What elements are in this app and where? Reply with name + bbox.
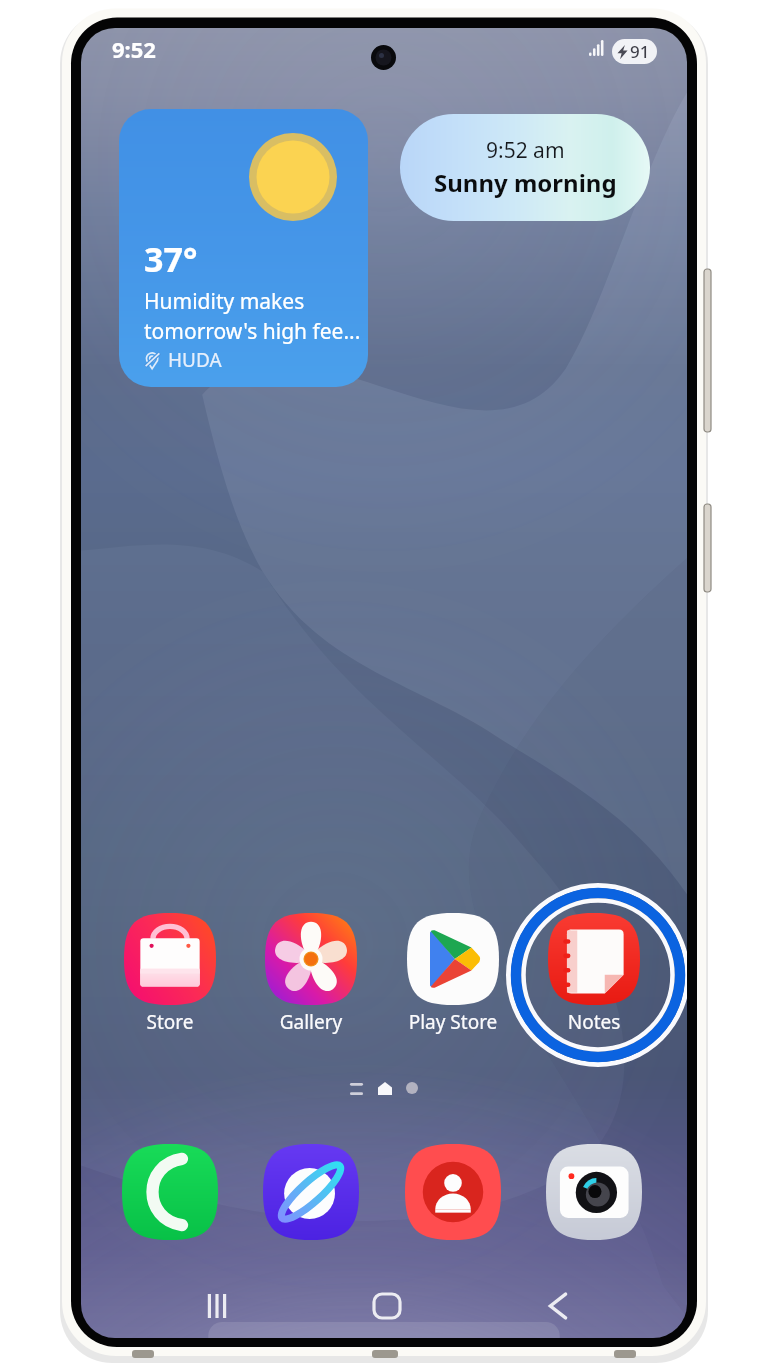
button[interactable]: 37°	[119, 109, 368, 387]
button[interactable]: Contacts	[405, 1144, 501, 1240]
staticText: Gallery	[256, 1009, 366, 1035]
staticText: Notes	[539, 1009, 649, 1035]
button[interactable]: Back	[518, 1278, 598, 1334]
button[interactable]: Phone	[122, 1144, 218, 1240]
staticText: 37°	[144, 236, 198, 282]
button[interactable]: Notes	[539, 907, 649, 1047]
button[interactable]: 9:52 am	[400, 114, 650, 221]
staticText: Sunny morning	[434, 166, 617, 199]
staticText: Play Store	[398, 1009, 508, 1035]
button[interactable]: Gallery	[256, 907, 366, 1047]
staticText: HUDA	[168, 347, 222, 373]
button[interactable]: Recents	[177, 1278, 257, 1334]
staticText: 9:52 am	[486, 136, 565, 165]
staticText: 91	[630, 40, 650, 63]
button[interactable]: Play Store	[398, 907, 508, 1047]
staticText: Humidity makes tomorrow's high fee...	[144, 287, 361, 345]
button[interactable]: Store	[115, 907, 225, 1047]
button[interactable]: Internet	[263, 1144, 359, 1240]
button[interactable]: Camera	[546, 1144, 642, 1240]
button[interactable]: Home	[347, 1278, 427, 1334]
staticText: Store	[115, 1009, 225, 1035]
staticText: 9:52	[112, 34, 156, 64]
